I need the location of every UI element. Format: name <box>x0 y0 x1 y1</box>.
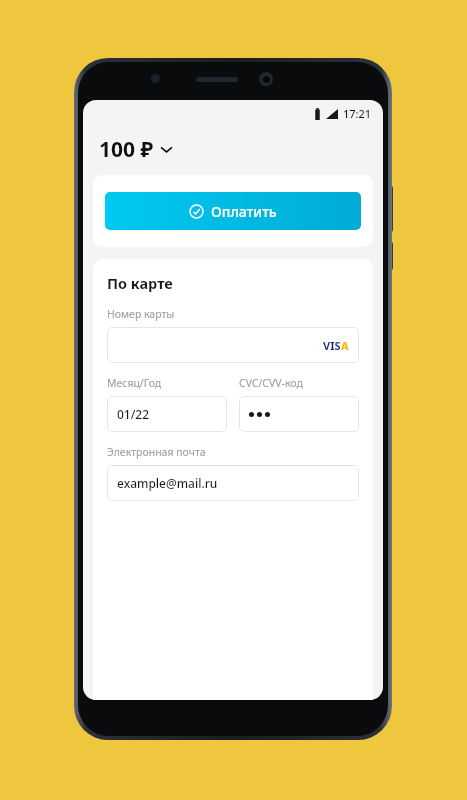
staticText: 01/22 <box>117 406 150 422</box>
staticText: A <box>341 338 349 353</box>
staticText: CVC/CVV-код <box>239 376 303 390</box>
button[interactable] <box>239 396 359 432</box>
staticText: Оплатить <box>211 202 277 221</box>
button[interactable]: 01/22 <box>107 396 227 432</box>
button[interactable]: example@mail.ru <box>107 465 359 501</box>
staticText: example@mail.ru <box>117 475 218 491</box>
staticText: VIS <box>323 338 341 353</box>
button[interactable]: Оплатить <box>105 192 361 230</box>
staticText: Месяц/Год <box>107 376 162 390</box>
staticText: По карте <box>107 273 173 293</box>
staticText: 100 ₽ <box>99 135 154 164</box>
button[interactable]: 100 ₽ <box>99 135 172 164</box>
staticText: Номер карты <box>107 307 175 321</box>
button[interactable]: VIS <box>107 327 359 363</box>
staticText: 17:21 <box>343 106 372 121</box>
staticText: Электронная почта <box>107 445 206 459</box>
